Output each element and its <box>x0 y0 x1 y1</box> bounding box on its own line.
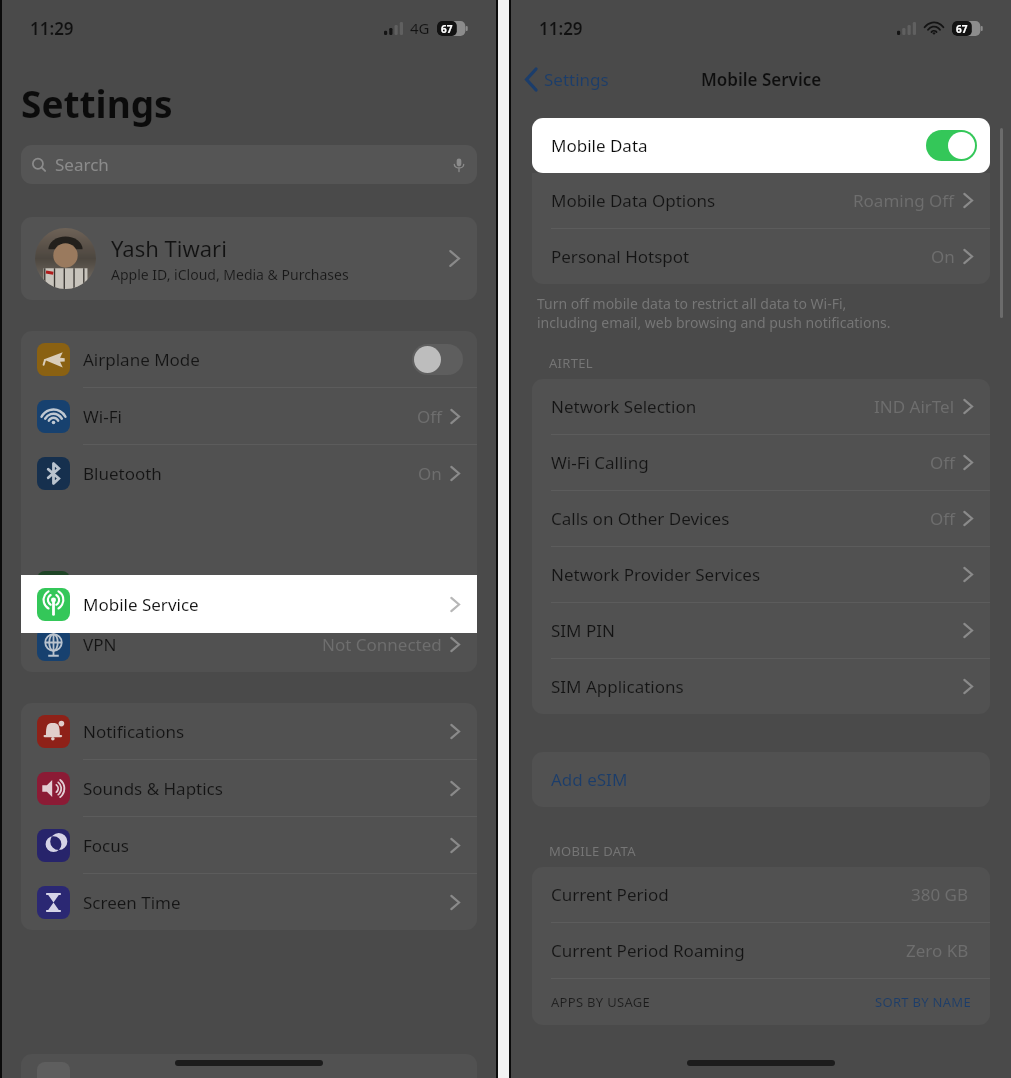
staticText: Focus <box>83 834 449 857</box>
staticText: Current Period Roaming <box>551 939 906 962</box>
staticText: Airplane Mode <box>83 348 412 371</box>
staticText: Turn off mobile data to restrict all dat… <box>537 294 891 332</box>
button[interactable]: Calls on Other Devices <box>532 491 990 546</box>
button[interactable]: Search <box>21 145 477 184</box>
button[interactable]: Sounds & Haptics <box>21 760 477 816</box>
staticText: 380 GB <box>911 883 969 906</box>
button[interactable]: Yash Tiwari <box>21 217 477 300</box>
other: Voice search <box>450 156 468 174</box>
staticText: Add eSIM <box>551 768 628 791</box>
button[interactable]: Toggle off <box>412 344 463 375</box>
staticText: Screen Time <box>83 891 449 914</box>
button[interactable]: SIM PIN <box>532 603 990 658</box>
staticText: Mobile Service <box>701 68 822 91</box>
staticText: Network Selection <box>551 395 874 418</box>
staticText: SIM PIN <box>551 619 962 642</box>
staticText: APPS BY USAGE <box>551 993 651 1011</box>
button[interactable]: Current Period <box>532 867 990 922</box>
staticText: IND AirTel <box>874 395 955 418</box>
button[interactable]: SORT BY NAME <box>875 993 971 1011</box>
staticText: Wi-Fi <box>83 405 417 428</box>
staticText: SORT BY NAME <box>875 993 971 1011</box>
button[interactable]: Wi-Fi <box>21 388 477 444</box>
staticText: Mobile Service <box>83 593 449 616</box>
staticText: 67 <box>956 22 968 36</box>
button[interactable]: Focus <box>21 817 477 873</box>
staticText: Bluetooth <box>83 462 418 485</box>
button[interactable]: Network Provider Services <box>532 547 990 602</box>
staticText: Notifications <box>83 720 449 743</box>
staticText: Not Connected <box>322 633 442 656</box>
button[interactable]: Settings <box>511 64 619 95</box>
button[interactable]: Mobile Data <box>532 118 990 173</box>
button[interactable]: SIM Applications <box>532 659 990 714</box>
button[interactable]: Personal Hotspot <box>21 559 477 615</box>
staticText: Search <box>55 153 450 176</box>
staticText: Wi-Fi Calling <box>551 451 930 474</box>
staticText: Current Period <box>551 883 911 906</box>
staticText: Sounds & Haptics <box>83 777 449 800</box>
staticText: On <box>931 245 955 268</box>
staticText: AIRTEL <box>549 354 593 372</box>
button[interactable]: Current Period Roaming <box>532 923 990 978</box>
button[interactable]: Add eSIM <box>532 752 990 807</box>
staticText: Mobile Data Options <box>551 189 853 212</box>
staticText: On <box>418 462 442 485</box>
button[interactable]: Mobile Service <box>21 575 477 633</box>
staticText: 67 <box>441 22 453 36</box>
staticText: Mobile Data <box>551 134 926 157</box>
staticText: SIM Applications <box>551 675 962 698</box>
staticText: 4G <box>410 18 430 38</box>
staticText: 11:29 <box>30 17 74 40</box>
staticText: Apple ID, iCloud, Media & Purchases <box>111 265 349 284</box>
button[interactable]: Notifications <box>21 703 477 759</box>
staticText: Settings <box>544 68 609 91</box>
staticText: 11:29 <box>539 17 583 40</box>
staticText: Off <box>930 451 955 474</box>
button[interactable]: Airplane Mode <box>21 331 477 387</box>
staticText: Settings <box>21 78 173 128</box>
button[interactable]: VPN <box>21 616 477 672</box>
staticText: Personal Hotspot <box>551 245 931 268</box>
staticText: Roaming Off <box>853 189 955 212</box>
button[interactable]: Bluetooth <box>21 445 477 501</box>
staticText: Yash Tiwari <box>111 233 227 263</box>
staticText: Off <box>417 405 442 428</box>
button[interactable]: Wi-Fi Calling <box>532 435 990 490</box>
staticText: MOBILE DATA <box>549 842 636 860</box>
staticText: Zero KB <box>906 939 969 962</box>
button[interactable]: Personal Hotspot <box>532 229 990 284</box>
staticText: Calls on Other Devices <box>551 507 930 530</box>
staticText: Network Provider Services <box>551 563 962 586</box>
button[interactable]: Screen Time <box>21 874 477 930</box>
staticText: Off <box>930 507 955 530</box>
button[interactable]: Toggle on <box>926 130 977 161</box>
button[interactable]: Network Selection <box>532 379 990 434</box>
button[interactable]: Mobile Data Options <box>532 173 990 228</box>
staticText: VPN <box>83 633 322 656</box>
